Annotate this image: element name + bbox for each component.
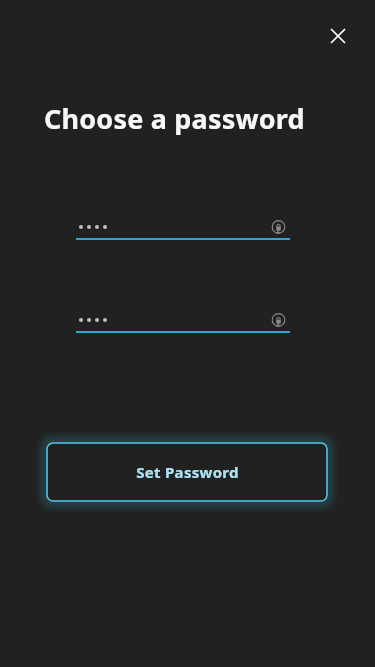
button[interactable]: Close (318, 16, 358, 56)
button[interactable]: Generate password, confirm (76, 307, 290, 333)
button[interactable]: Generate password (76, 214, 290, 240)
button[interactable]: Set Password (37, 433, 337, 511)
button[interactable]: Generate password, confirm (266, 308, 290, 332)
button[interactable]: Generate password (266, 215, 290, 239)
staticText: Set Password (136, 462, 239, 482)
staticText: Choose a password (44, 100, 305, 137)
